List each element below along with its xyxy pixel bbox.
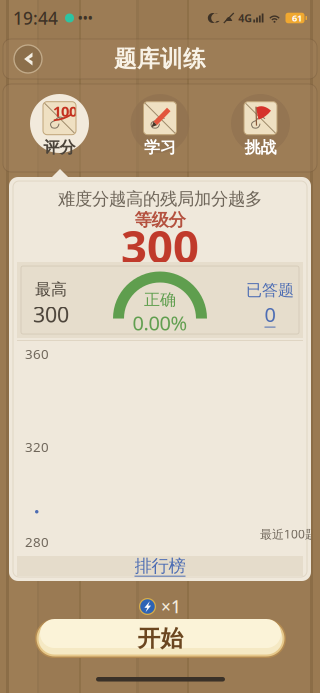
- staticText: 100: [53, 101, 77, 121]
- staticText: 最高: [35, 279, 67, 299]
- button[interactable]: 挑战: [231, 94, 290, 153]
- button[interactable]: 学习: [130, 94, 189, 153]
- staticText: ×1: [161, 595, 181, 618]
- staticText: 挑战: [244, 138, 276, 157]
- staticText: 正确: [144, 290, 176, 310]
- staticText: 4G: [238, 11, 252, 25]
- staticText: 280: [25, 533, 49, 551]
- staticText: 0.00%: [132, 309, 187, 336]
- staticText: 已答题: [246, 280, 294, 300]
- button[interactable]: 开始: [35, 619, 286, 658]
- staticText: 评分: [43, 138, 75, 157]
- staticText: •••: [78, 10, 93, 26]
- staticText: 排行榜: [134, 555, 185, 577]
- staticText: 320: [25, 438, 49, 456]
- button[interactable]: 已答题: [246, 280, 294, 328]
- staticText: 开始: [137, 625, 183, 652]
- staticText: 最近100题: [260, 526, 317, 542]
- staticText: 等级分: [134, 209, 185, 231]
- button[interactable]: 100: [30, 94, 89, 153]
- button[interactable]: 排行榜: [17, 556, 303, 576]
- staticText: 360: [25, 345, 49, 363]
- staticText: 0: [264, 301, 275, 328]
- staticText: 300: [33, 300, 69, 328]
- button[interactable]: Back: [14, 45, 42, 73]
- staticText: 19:44: [13, 6, 58, 29]
- staticText: 300: [121, 216, 199, 276]
- staticText: 题库训练: [114, 45, 206, 73]
- staticText: 61: [292, 12, 302, 24]
- staticText: 难度分越高的残局加分越多: [58, 188, 262, 210]
- staticText: 学习: [144, 138, 176, 157]
